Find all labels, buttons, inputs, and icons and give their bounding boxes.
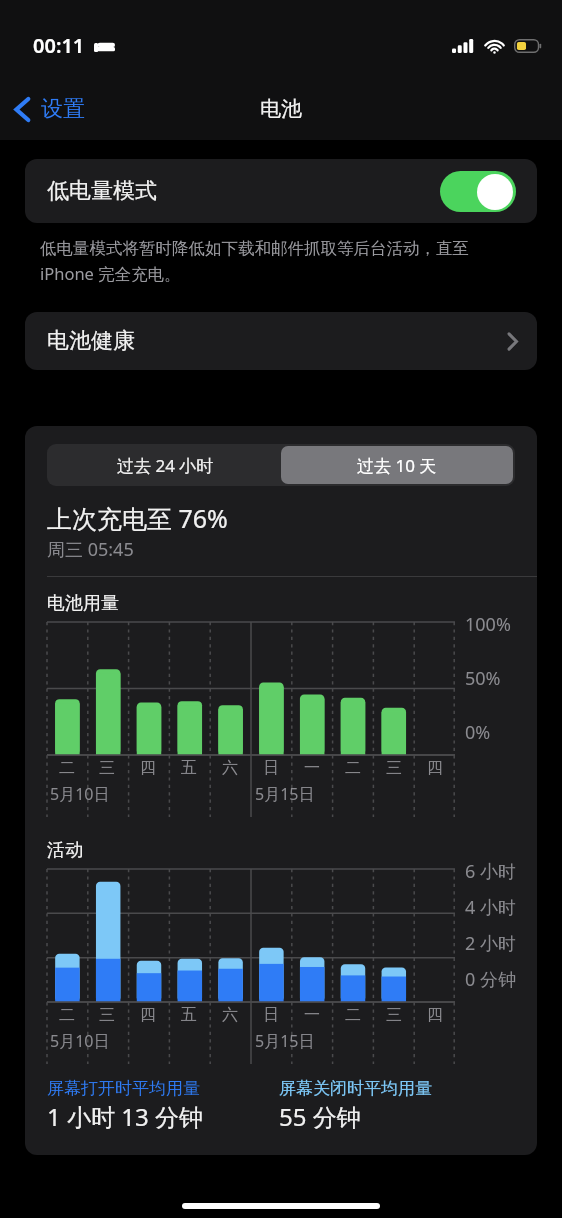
- staticText: 电池用量: [47, 592, 119, 615]
- staticText: 一: [304, 758, 320, 778]
- staticText: 5月10日: [50, 783, 110, 805]
- staticText: 电池: [260, 96, 302, 122]
- staticText: 50%: [465, 666, 501, 691]
- staticText: 四: [427, 1005, 443, 1025]
- staticText: 屏幕关闭时平均用量: [279, 1078, 432, 1099]
- staticText: 设置: [41, 95, 85, 123]
- other: 低电量模式 开关: [440, 171, 516, 212]
- staticText: 二: [59, 758, 75, 778]
- staticText: 五: [181, 758, 197, 778]
- staticText: 活动: [47, 839, 83, 862]
- staticText: 过去 24 小时: [117, 454, 214, 477]
- button[interactable]: 过去 10 天: [281, 446, 513, 484]
- staticText: 三: [386, 1005, 402, 1025]
- staticText: 6 小时: [465, 859, 516, 884]
- staticText: 六: [222, 758, 238, 778]
- button[interactable]: 过去 24 小时: [49, 446, 281, 484]
- staticText: 5月15日: [255, 1030, 315, 1052]
- button[interactable]: 设置: [0, 87, 99, 131]
- button[interactable]: 低电量模式: [25, 159, 537, 223]
- staticText: 1 小时 13 分钟: [47, 1100, 203, 1133]
- staticText: 周三 05:45: [47, 537, 134, 562]
- staticText: 上次充电至 76%: [47, 501, 228, 535]
- staticText: 三: [386, 758, 402, 778]
- staticText: 电池健康: [47, 327, 135, 355]
- staticText: 三: [99, 1005, 115, 1025]
- staticText: 4 小时: [465, 895, 516, 920]
- staticText: 日: [263, 1005, 279, 1025]
- staticText: 屏幕打开时平均用量: [47, 1078, 200, 1099]
- staticText: 二: [345, 758, 361, 778]
- staticText: 00:11: [33, 32, 85, 59]
- staticText: 二: [59, 1005, 75, 1025]
- staticText: 四: [140, 1005, 156, 1025]
- staticText: 四: [427, 758, 443, 778]
- staticText: 100%: [465, 612, 511, 637]
- staticText: 二: [345, 1005, 361, 1025]
- staticText: 三: [99, 758, 115, 778]
- staticText: 低电量模式将暂时降低如下载和邮件抓取等后台活动，直至 iPhone 完全充电。: [40, 236, 502, 285]
- staticText: 过去 10 天: [357, 454, 437, 477]
- staticText: 0%: [465, 720, 491, 745]
- staticText: 5月10日: [50, 1030, 110, 1052]
- staticText: 五: [181, 1005, 197, 1025]
- button[interactable]: 电池健康: [25, 312, 537, 370]
- staticText: 四: [140, 758, 156, 778]
- staticText: 5月15日: [255, 783, 315, 805]
- staticText: 低电量模式: [47, 177, 157, 205]
- staticText: 0 分钟: [465, 967, 516, 992]
- staticText: 一: [304, 1005, 320, 1025]
- staticText: 六: [222, 1005, 238, 1025]
- staticText: 55 分钟: [279, 1100, 361, 1133]
- staticText: 日: [263, 758, 279, 778]
- staticText: 2 小时: [465, 931, 516, 956]
